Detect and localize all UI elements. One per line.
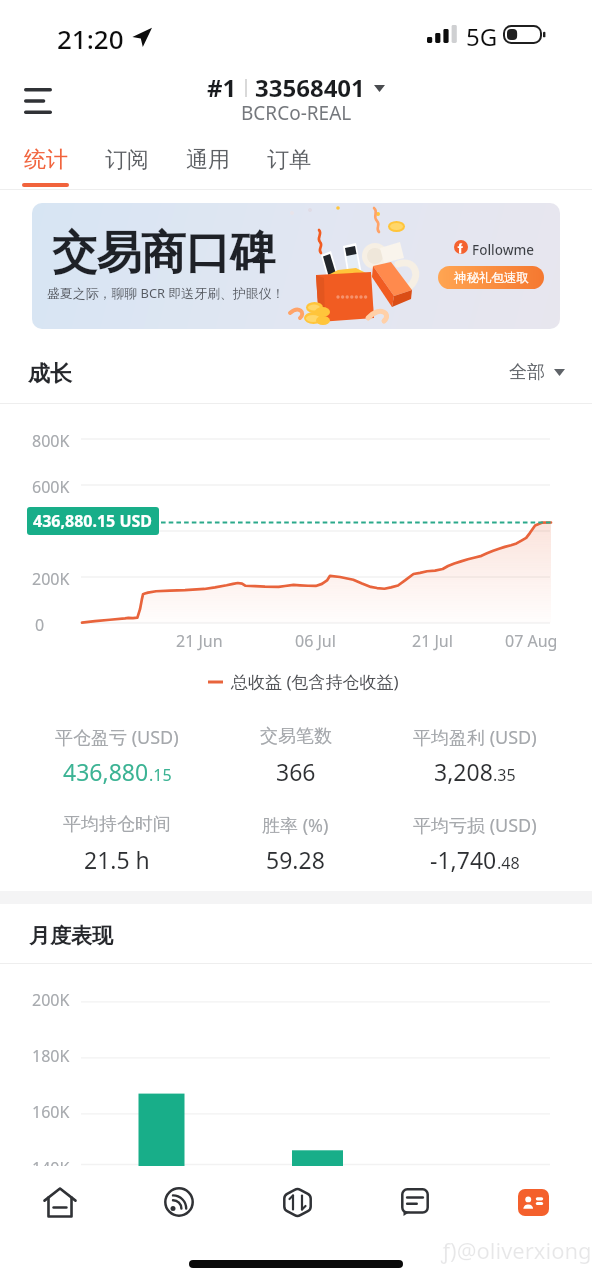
button[interactable]: Messages bbox=[356, 1176, 474, 1228]
staticText: 600K bbox=[32, 476, 70, 498]
staticText: ƒ)@oliverxiong bbox=[441, 1235, 592, 1265]
button[interactable]: 统计 bbox=[5, 140, 86, 190]
button[interactable]: Menu bbox=[10, 73, 65, 128]
staticText: .35 bbox=[493, 764, 516, 786]
staticText: 21 Jun bbox=[176, 630, 223, 652]
staticText: 200K bbox=[32, 568, 70, 590]
staticText: 436,880 bbox=[63, 756, 149, 787]
staticText: 盛夏之际，聊聊 BCR 即送牙刷、护眼仪！ bbox=[47, 284, 285, 302]
staticText: 3,208 bbox=[434, 756, 493, 787]
staticText: #1 bbox=[207, 71, 237, 104]
staticText: 21:20 bbox=[57, 21, 124, 56]
staticText: -1,740 bbox=[430, 844, 497, 875]
staticText: 全部 bbox=[509, 361, 545, 384]
staticText: 交易笔数 bbox=[260, 725, 332, 748]
staticText: 21.5 h bbox=[84, 844, 150, 875]
staticText: 胜率 (%) bbox=[262, 813, 329, 838]
button[interactable]: 交易商口碑 bbox=[32, 203, 560, 329]
staticText: 交易商口碑 bbox=[52, 225, 275, 282]
staticText: 总收益 (包含持仓收益) bbox=[231, 670, 399, 693]
button[interactable]: 神秘礼包速取 bbox=[438, 266, 544, 289]
button[interactable]: 订单 bbox=[248, 140, 329, 190]
staticText: 订阅 bbox=[105, 146, 149, 174]
staticText: 通用 bbox=[186, 146, 230, 174]
staticText: 5G bbox=[466, 20, 498, 53]
staticText: 160K bbox=[32, 1101, 70, 1123]
staticText: Followme bbox=[472, 241, 535, 259]
staticText: 平均亏损 (USD) bbox=[413, 813, 537, 838]
staticText: 33568401 bbox=[255, 71, 365, 104]
button[interactable]: Trade bbox=[238, 1176, 356, 1228]
button[interactable]: 全部 bbox=[509, 361, 565, 384]
staticText: 06 Jul bbox=[295, 630, 336, 652]
staticText: 21 Jul bbox=[412, 630, 453, 652]
staticText: 59.28 bbox=[266, 844, 325, 875]
staticText: .48 bbox=[497, 852, 520, 874]
staticText: 订单 bbox=[267, 146, 311, 174]
button[interactable]: 通用 bbox=[167, 140, 248, 190]
staticText: 0 bbox=[35, 614, 45, 636]
button[interactable]: Profile bbox=[474, 1176, 592, 1228]
staticText: 统计 bbox=[24, 146, 68, 174]
staticText: 800K bbox=[32, 430, 70, 452]
staticText: 366 bbox=[276, 756, 316, 787]
staticText: BCRCo-REAL bbox=[241, 100, 352, 126]
staticText: 140K bbox=[32, 1157, 70, 1166]
staticText: 436,880.15 USD bbox=[33, 510, 153, 532]
staticText: 平仓盈亏 (USD) bbox=[55, 725, 179, 750]
staticText: 平均持仓时间 bbox=[63, 813, 171, 836]
staticText: 07 Aug bbox=[505, 630, 558, 652]
staticText: .15 bbox=[149, 764, 172, 786]
staticText: 月度表现 bbox=[29, 923, 113, 949]
staticText: 200K bbox=[32, 989, 70, 1011]
button[interactable]: 订阅 bbox=[86, 140, 167, 190]
staticText: 180K bbox=[32, 1045, 70, 1067]
button[interactable]: Home bbox=[0, 1176, 119, 1228]
staticText: 平均盈利 (USD) bbox=[413, 725, 537, 750]
button[interactable]: Signals bbox=[119, 1176, 238, 1228]
staticText: 神秘礼包速取 bbox=[454, 270, 529, 286]
staticText: 成长 bbox=[28, 360, 72, 388]
